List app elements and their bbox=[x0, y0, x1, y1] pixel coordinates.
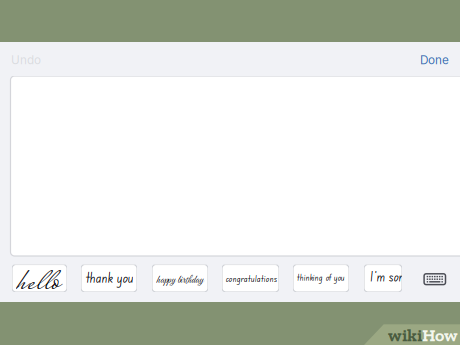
button[interactable]: thinking of you bbox=[293, 264, 349, 292]
button[interactable]: hello bbox=[12, 264, 67, 292]
staticText: How bbox=[422, 324, 458, 345]
button[interactable]: congratulations bbox=[222, 264, 279, 292]
button[interactable]: Keyboard bbox=[424, 274, 445, 285]
staticText: I'm sor bbox=[370, 268, 404, 285]
staticText: hello bbox=[15, 259, 59, 310]
staticText: Done bbox=[420, 53, 449, 67]
button[interactable]: happy birthday bbox=[152, 264, 208, 292]
button[interactable]: I'm sor bbox=[364, 264, 402, 292]
button[interactable]: Done bbox=[403, 45, 449, 75]
staticText: happy birthday bbox=[156, 274, 203, 287]
button[interactable]: Undo bbox=[11, 45, 57, 75]
button[interactable]: thank you bbox=[81, 264, 137, 292]
staticText: Undo bbox=[11, 53, 41, 67]
staticText: wiki bbox=[388, 324, 422, 345]
staticText: thank you bbox=[86, 268, 134, 286]
staticText: thinking of you bbox=[297, 271, 345, 283]
staticText: congratulations bbox=[226, 272, 277, 284]
